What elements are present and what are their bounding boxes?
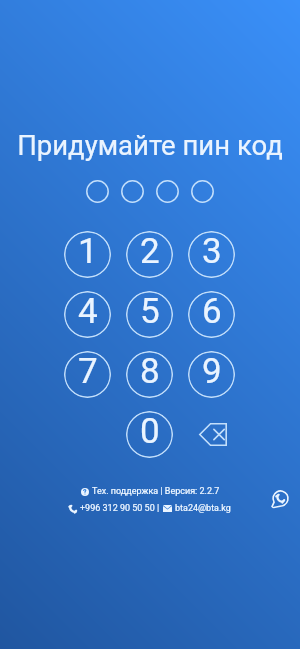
- button[interactable]: 9: [188, 351, 235, 398]
- staticText: bta24@bta.kg: [175, 503, 231, 514]
- button[interactable]: Backspace: [188, 411, 235, 458]
- staticText: 6: [202, 291, 222, 332]
- staticText: 7: [78, 351, 98, 392]
- button[interactable]: 3: [188, 231, 235, 278]
- staticText: 3: [202, 231, 222, 272]
- button[interactable]: 1: [64, 231, 111, 278]
- button[interactable]: 6: [188, 291, 235, 338]
- staticText: 1: [78, 231, 98, 272]
- staticText: 9: [202, 351, 222, 392]
- staticText: 8: [140, 351, 160, 392]
- staticText: 5: [140, 291, 160, 332]
- staticText: Придумайте пин код: [0, 129, 300, 161]
- button[interactable]: WhatsApp: [268, 488, 290, 510]
- staticText: Тех. поддержка | Версия: 2.2.7: [92, 486, 220, 497]
- staticText: 2: [140, 231, 160, 272]
- button[interactable]: 5: [126, 291, 173, 338]
- button[interactable]: 4: [64, 291, 111, 338]
- button[interactable]: 0: [126, 411, 173, 458]
- staticText: +996 312 90 50 50 |: [80, 503, 160, 514]
- button[interactable]: 7: [64, 351, 111, 398]
- button[interactable]: 2: [126, 231, 173, 278]
- staticText: 4: [78, 291, 98, 332]
- staticText: 0: [140, 411, 160, 452]
- button[interactable]: 8: [126, 351, 173, 398]
